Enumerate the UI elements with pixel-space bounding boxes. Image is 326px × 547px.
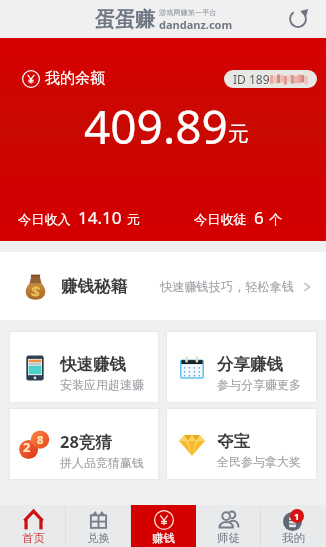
staticText: 兑换: [87, 531, 110, 545]
staticText: 2: [23, 438, 31, 456]
staticText: 安装应用超速赚: [60, 377, 144, 392]
button[interactable]: 师徒: [196, 505, 261, 547]
staticText: 快速赚钱: [60, 354, 126, 375]
button[interactable]: 2: [9, 408, 159, 480]
staticText: 我的余额: [45, 69, 105, 88]
staticText: 赚钱秘籍: [61, 276, 127, 297]
button[interactable]: 兑换: [66, 505, 131, 547]
button[interactable]: 赚钱: [131, 505, 196, 547]
staticText: 个: [269, 211, 283, 228]
staticText: 参与分享赚更多: [217, 377, 301, 392]
staticText: 首页: [22, 531, 45, 545]
button[interactable]: ID 189: [233, 71, 308, 87]
staticText: 游戏网赚第一平台: [159, 8, 217, 17]
button[interactable]: 首页: [0, 505, 66, 547]
staticText: ID 189: [233, 71, 270, 87]
staticText: 分享赚钱: [217, 354, 283, 375]
button[interactable]: 赚钱秘籍: [0, 252, 326, 320]
button[interactable]: Refresh: [284, 5, 312, 33]
staticText: 今日收徒: [194, 211, 247, 228]
staticText: 14.10: [78, 206, 122, 229]
staticText: 元: [228, 121, 249, 147]
staticText: 我的: [282, 531, 305, 545]
staticText: 28竞猜: [60, 430, 112, 453]
staticText: 蛋蛋赚: [95, 7, 155, 32]
staticText: 1: [294, 510, 300, 523]
staticText: 夺宝: [217, 431, 250, 452]
staticText: 师徒: [217, 531, 240, 545]
staticText: 8: [37, 432, 44, 447]
staticText: 赚钱: [152, 531, 175, 545]
button[interactable]: 快速赚钱: [9, 331, 159, 403]
staticText: dandanz.com: [159, 17, 233, 32]
staticText: 409.89: [84, 95, 228, 158]
button[interactable]: 1: [261, 505, 326, 547]
staticText: 今日收入: [18, 211, 71, 228]
staticText: 全民参与拿大奖: [217, 454, 301, 469]
button[interactable]: 夺宝: [166, 408, 317, 480]
staticText: 元: [127, 211, 141, 228]
button[interactable]: 分享赚钱: [166, 331, 317, 403]
staticText: 快速赚钱技巧，轻松拿钱: [160, 279, 295, 294]
staticText: 6: [254, 206, 264, 229]
staticText: 拼人品竞猜赢钱: [60, 455, 144, 470]
